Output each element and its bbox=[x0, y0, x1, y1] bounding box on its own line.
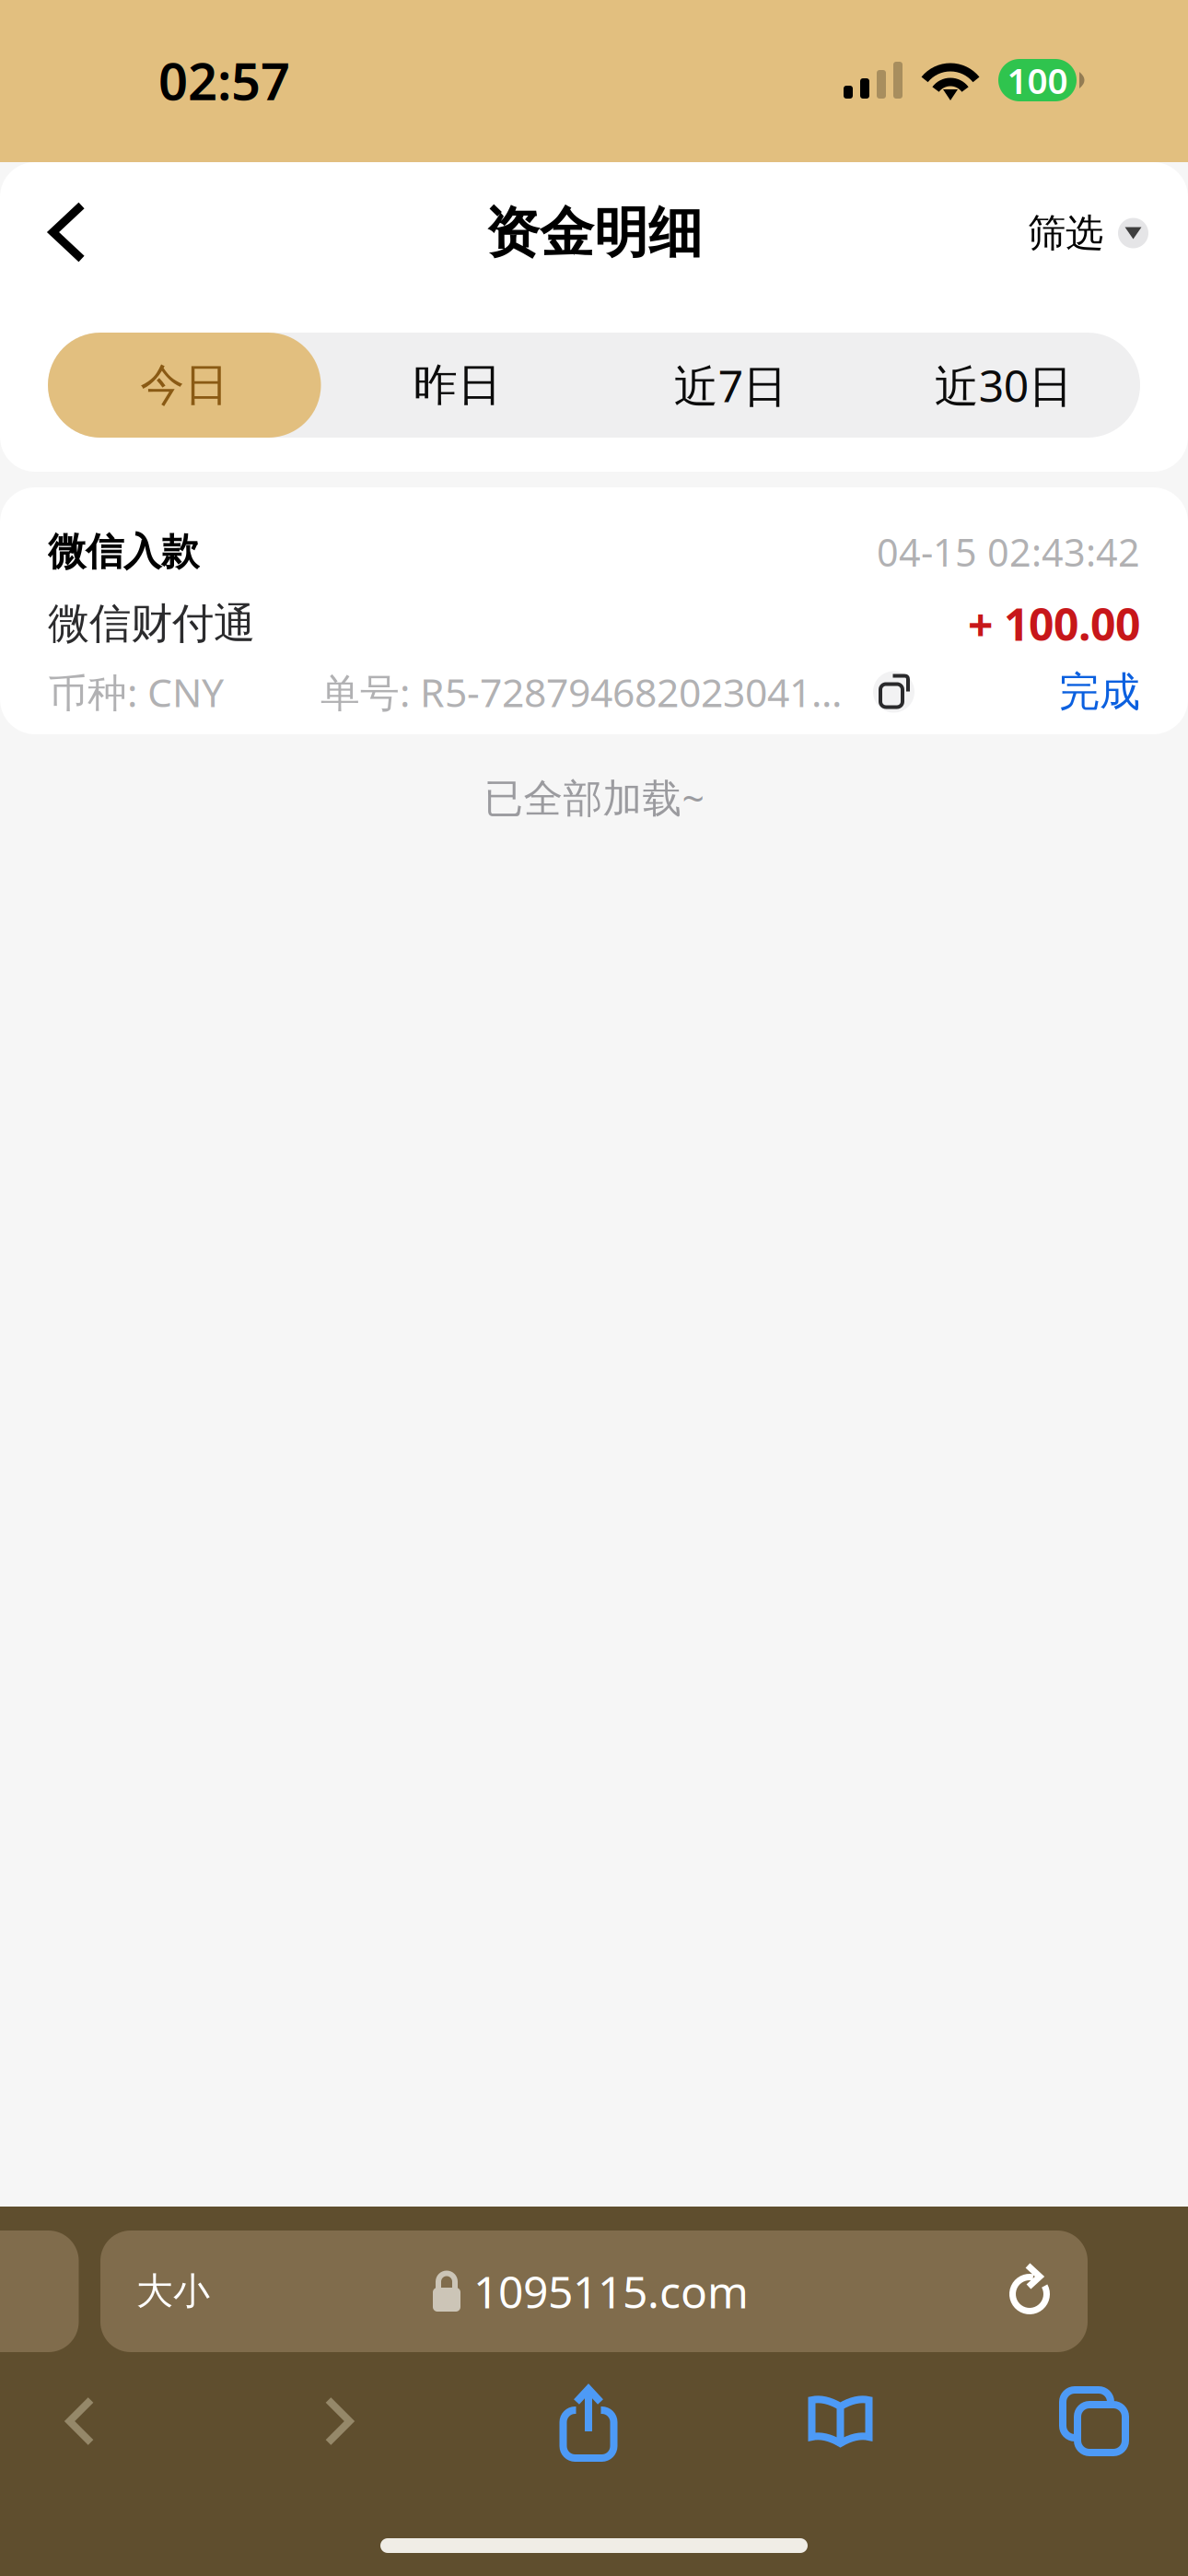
staticText: 币种: CNY bbox=[48, 666, 224, 718]
button[interactable]: 完成 bbox=[1059, 667, 1140, 717]
button[interactable]: Reload bbox=[1006, 2231, 1088, 2352]
staticText: 02:57 bbox=[158, 46, 290, 114]
button[interactable]: Bookmarks bbox=[659, 2371, 1022, 2472]
staticText: 已全部加载~ bbox=[484, 771, 704, 823]
button[interactable]: Share bbox=[518, 2371, 659, 2472]
button[interactable]: 近30日 bbox=[867, 333, 1140, 438]
button[interactable]: 今日 bbox=[48, 333, 321, 438]
button[interactable]: Tabs bbox=[1022, 2371, 1166, 2472]
staticText: 完成 bbox=[1059, 667, 1140, 717]
staticText: 昨日 bbox=[413, 358, 502, 412]
staticText: 近7日 bbox=[674, 356, 787, 414]
staticText: 筛选 bbox=[1028, 210, 1103, 256]
staticText: 微信入款 bbox=[48, 528, 199, 575]
staticText: 近30日 bbox=[935, 356, 1073, 414]
staticText: 单号: R5-728794682023041... bbox=[320, 666, 842, 718]
staticText: 04-15 02:43:42 bbox=[877, 527, 1140, 577]
staticText: 微信财付通 bbox=[48, 598, 255, 649]
staticText: 今日 bbox=[140, 358, 229, 412]
button[interactable]: Copy order number bbox=[870, 668, 917, 715]
button[interactable]: Back bbox=[0, 2371, 160, 2472]
staticText: 1095115.com bbox=[473, 2262, 749, 2321]
button[interactable]: 筛选 bbox=[1028, 181, 1188, 284]
staticText: 资金明细 bbox=[485, 200, 703, 266]
staticText: + 100.00 bbox=[968, 594, 1140, 653]
button[interactable]: 昨日 bbox=[321, 333, 594, 438]
button[interactable]: Back bbox=[0, 181, 129, 284]
button[interactable]: 近7日 bbox=[594, 333, 867, 438]
button[interactable]: 大小 bbox=[100, 2231, 210, 2352]
button[interactable]: Forward bbox=[160, 2371, 518, 2472]
staticText: 100 bbox=[1007, 56, 1068, 104]
staticText: 大小 bbox=[136, 2269, 210, 2314]
